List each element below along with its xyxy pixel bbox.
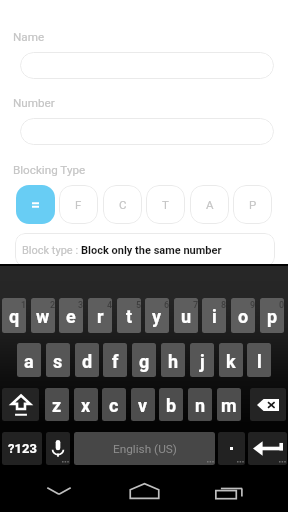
button[interactable]: b — [159, 388, 183, 421]
button[interactable]: Back — [33, 471, 85, 511]
button[interactable]: j — [190, 343, 214, 377]
button[interactable]: T — [146, 185, 185, 224]
staticText: v — [138, 395, 148, 416]
button[interactable]: w — [31, 298, 55, 333]
staticText: 2 — [50, 300, 55, 311]
button[interactable]: d — [75, 343, 99, 377]
button[interactable] — [20, 118, 274, 145]
staticText: x — [81, 395, 91, 416]
staticText: f — [112, 351, 119, 372]
button[interactable]: Block type : — [15, 233, 275, 267]
button[interactable]: n — [188, 388, 212, 421]
button[interactable] — [20, 52, 274, 79]
button[interactable]: x — [74, 388, 98, 421]
staticText: e — [66, 306, 76, 327]
staticText: Name — [13, 30, 45, 44]
button[interactable]: e — [59, 298, 83, 333]
staticText: 5 — [136, 300, 141, 311]
staticText: m — [221, 395, 237, 416]
button[interactable]: i — [202, 298, 226, 333]
button[interactable]: l — [247, 343, 271, 377]
staticText: d — [82, 351, 93, 372]
button[interactable]: F — [59, 185, 98, 224]
staticText: ?123 — [8, 441, 37, 456]
staticText: t — [126, 306, 133, 327]
staticText: n — [195, 395, 206, 416]
staticText: c — [109, 395, 119, 416]
button[interactable] — [16, 185, 55, 224]
button[interactable]: A — [190, 185, 229, 224]
button[interactable]: c — [102, 388, 126, 421]
staticText: 3 — [78, 300, 83, 311]
button[interactable]: Enter — [248, 432, 287, 465]
button[interactable]: z — [45, 388, 69, 421]
staticText: 1 — [21, 300, 26, 311]
button[interactable]: m — [217, 388, 241, 421]
staticText: Blocking Type — [13, 163, 86, 177]
button[interactable]: f — [103, 343, 127, 377]
staticText: C — [119, 198, 127, 211]
staticText: o — [238, 306, 249, 327]
staticText: 4 — [107, 300, 112, 311]
staticText: 9 — [250, 300, 255, 311]
staticText: 8 — [221, 300, 226, 311]
button[interactable]: Symbols — [2, 432, 42, 465]
button[interactable]: r — [88, 298, 112, 333]
button[interactable]: Home — [118, 471, 170, 511]
button[interactable]: Period — [218, 432, 245, 465]
button[interactable]: o — [231, 298, 255, 333]
button[interactable]: a — [17, 343, 41, 377]
staticText: F — [75, 198, 82, 211]
staticText: Block type : — [22, 244, 81, 257]
staticText: Number — [13, 96, 55, 110]
button[interactable]: q — [2, 298, 26, 333]
staticText: z — [52, 395, 62, 416]
button[interactable]: h — [161, 343, 185, 377]
button[interactable]: English (US) — [74, 432, 215, 465]
button[interactable]: g — [132, 343, 156, 377]
staticText: T — [162, 198, 169, 211]
button[interactable]: y — [145, 298, 169, 333]
button[interactable]: t — [117, 298, 141, 333]
button[interactable]: s — [46, 343, 70, 377]
staticText: Block only the same number — [81, 244, 222, 257]
button[interactable]: Voice input — [46, 432, 70, 465]
button[interactable]: u — [174, 298, 198, 333]
staticText: 6 — [164, 300, 169, 311]
staticText: h — [168, 351, 179, 372]
staticText: b — [166, 395, 177, 416]
button[interactable]: Backspace — [250, 388, 286, 421]
button[interactable]: Shift — [2, 388, 39, 421]
staticText: j — [200, 351, 205, 372]
button[interactable]: P — [233, 185, 272, 224]
staticText: s — [53, 351, 63, 372]
staticText: k — [226, 351, 236, 372]
staticText: i — [212, 306, 217, 327]
staticText: English (US) — [113, 442, 177, 456]
staticText: u — [181, 306, 192, 327]
button[interactable]: k — [219, 343, 243, 377]
button[interactable]: C — [103, 185, 142, 224]
staticText: g — [139, 351, 150, 372]
staticText: 0 — [279, 300, 284, 311]
staticText: l — [257, 351, 262, 372]
staticText: A — [206, 198, 214, 211]
staticText: q — [9, 306, 20, 327]
staticText: r — [97, 306, 104, 327]
staticText: P — [249, 198, 257, 211]
button[interactable]: Recents — [203, 471, 255, 511]
staticText: a — [24, 351, 34, 372]
staticText: w — [36, 306, 50, 327]
staticText: p — [267, 306, 278, 327]
staticText: y — [152, 306, 162, 327]
button[interactable]: p — [260, 298, 284, 333]
staticText: 7 — [193, 300, 198, 311]
button[interactable]: v — [131, 388, 155, 421]
